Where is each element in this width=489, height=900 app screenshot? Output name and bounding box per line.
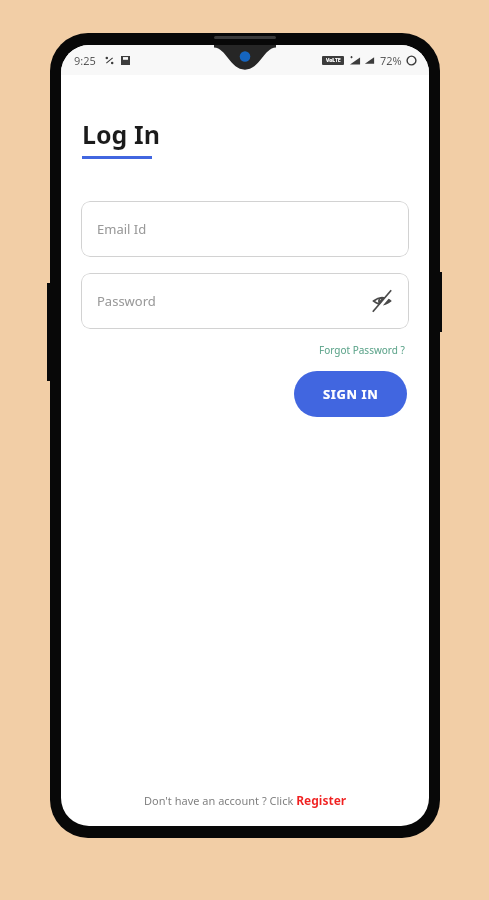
staticText: Log In xyxy=(82,117,160,151)
button[interactable]: Forgot Password ? xyxy=(317,341,407,359)
staticText: Forgot Password ? xyxy=(319,343,405,357)
button[interactable]: Toggle password visibility xyxy=(369,288,395,314)
staticText: VoLTE xyxy=(326,57,341,64)
button[interactable]: SIGN IN xyxy=(294,371,407,417)
staticText: Don't have an account ? Click Register xyxy=(144,792,347,808)
staticText: 72% xyxy=(380,53,402,68)
staticText: Email Id xyxy=(97,220,147,238)
button[interactable]: Password xyxy=(81,273,409,329)
staticText: Password xyxy=(97,292,156,310)
button[interactable]: Don't have an account ? Click Register xyxy=(61,792,429,826)
staticText: 9:25 xyxy=(74,53,96,68)
staticText: SIGN IN xyxy=(323,385,379,403)
button[interactable]: Email Id xyxy=(81,201,409,257)
